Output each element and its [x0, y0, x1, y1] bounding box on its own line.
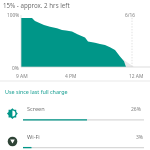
staticText: 6/16 [125, 12, 136, 19]
staticText: 15% - approx. 2 hrs left [3, 1, 70, 9]
staticText: 4 PM [65, 73, 77, 80]
other: Screen brightness [6, 107, 19, 120]
button[interactable]: Wi-Fi [0, 129, 150, 150]
staticText: 100% [7, 12, 20, 19]
staticText: Screen [27, 105, 45, 113]
staticText: 9 AM [16, 73, 28, 80]
staticText: Wi-Fi [27, 133, 40, 141]
staticText: Use since last full charge [5, 88, 68, 95]
staticText: 12 AM [129, 73, 144, 80]
staticText: 26% [131, 106, 141, 113]
button[interactable]: Screen [0, 101, 150, 128]
other: Wi-Fi [7, 135, 20, 148]
staticText: 0% [12, 65, 19, 72]
staticText: 3% [136, 134, 144, 141]
